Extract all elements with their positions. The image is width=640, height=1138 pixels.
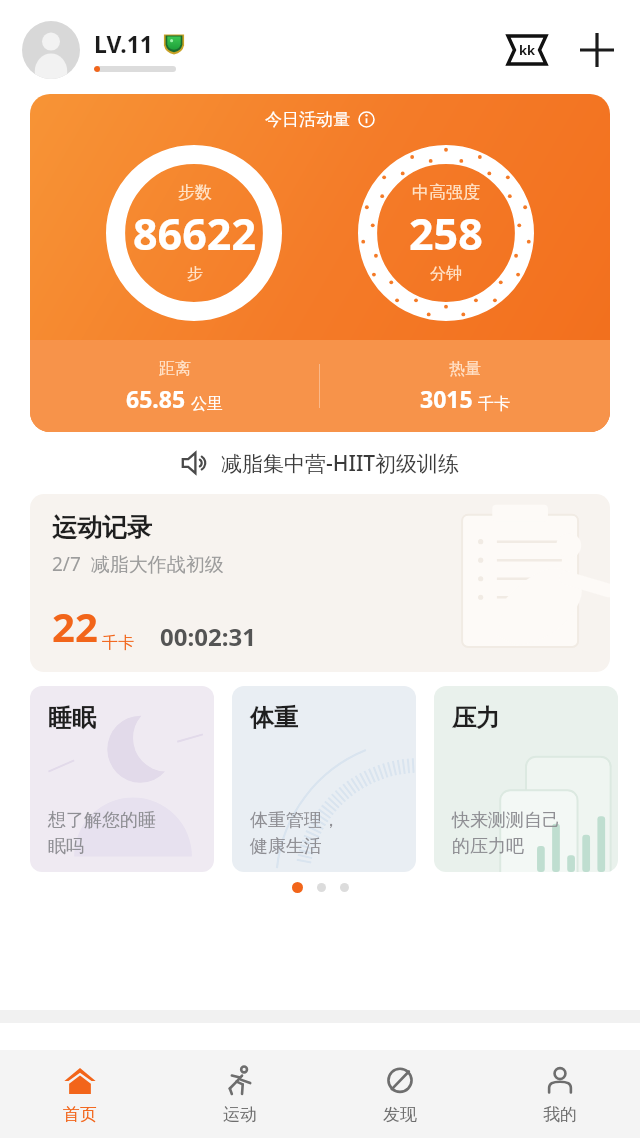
staticText: 想了解您的睡 眠吗 [48,809,156,858]
staticText: 公里 [191,394,223,414]
staticText: 86622 [133,204,256,263]
staticText: 22 [52,599,98,653]
staticText: 首页 [63,1104,97,1125]
button[interactable]: 运动记录 [30,494,610,672]
staticText: LV.11 [94,28,153,59]
staticText: 热量 [449,359,481,379]
button[interactable]: 发现 [320,1050,480,1138]
button[interactable]: 我的 [480,1050,640,1138]
button[interactable]: 体重 [232,686,416,872]
button[interactable]: kk coupon [504,27,550,73]
button[interactable]: LV.11 [94,28,186,72]
button[interactable]: Profile avatar [22,21,80,79]
staticText: 65.85 [126,383,186,414]
staticText: 258 [409,204,483,263]
staticText: 运动 [223,1104,257,1125]
staticText: 步 [187,264,203,284]
staticText: 运动记录 [52,512,152,543]
staticText: 睡眠 [48,703,96,733]
staticText: 中高强度 [412,182,480,203]
staticText: 3015 [420,383,473,414]
button[interactable]: 运动 [160,1050,320,1138]
button[interactable]: 压力 [434,686,618,872]
staticText: 距离 [159,359,191,379]
button[interactable]: 今日活动量 [30,94,610,432]
staticText: 减脂集中营-HIIT初级训练 [221,449,460,478]
staticText: 2/7 减脂大作战初级 [52,551,224,577]
staticText: 00:02:31 [160,620,256,653]
staticText: 今日活动量 [265,109,350,130]
button[interactable]: 睡眠 [30,686,214,872]
staticText: 压力 [452,703,500,733]
staticText: 千卡 [102,633,134,653]
staticText: 步数 [178,182,212,203]
button[interactable]: Add [574,27,620,73]
staticText: 体重 [250,703,298,733]
button[interactable]: 首页 [0,1050,160,1138]
staticText: 分钟 [430,264,462,284]
staticText: 我的 [543,1104,577,1125]
staticText: 体重管理， 健康生活 [250,809,340,858]
staticText: kk [519,41,536,59]
staticText: 快来测测自己 的压力吧 [452,809,560,858]
button[interactable]: 减脂集中营-HIIT初级训练 [0,448,640,478]
staticText: 发现 [383,1104,417,1125]
staticText: 千卡 [478,394,510,414]
